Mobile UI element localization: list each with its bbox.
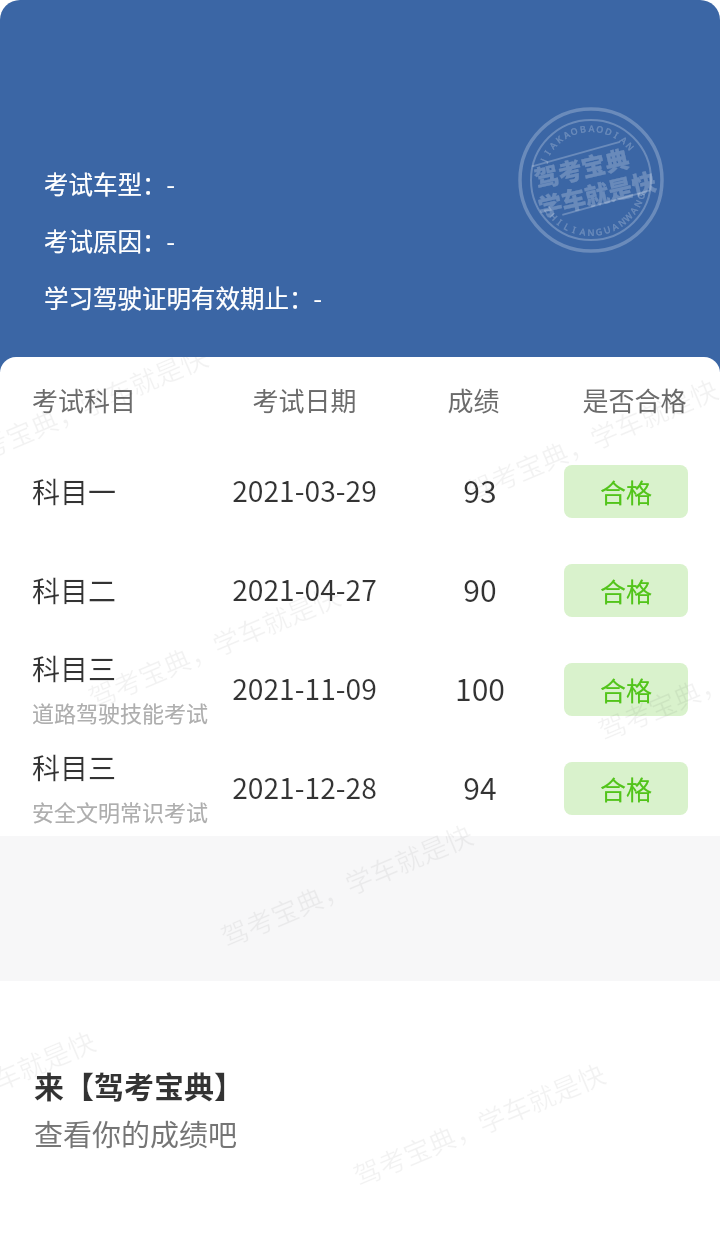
staticText: 科目三: [32, 648, 117, 689]
staticText: 94: [463, 765, 497, 808]
staticText: 考试科目: [32, 381, 137, 419]
staticText: 合格: [600, 572, 653, 610]
staticText: 100: [455, 666, 505, 709]
staticText: 安全文明常识考试: [32, 795, 209, 827]
button[interactable]: 科目二: [0, 541, 720, 640]
staticText: 查看你的成绩吧: [34, 1112, 238, 1154]
staticText: 90: [463, 567, 497, 610]
button[interactable]: 科目三: [0, 739, 720, 836]
button[interactable]: 科目一: [0, 442, 720, 541]
staticText: 道路驾驶技能考试: [32, 696, 209, 728]
staticText: 成绩: [447, 381, 500, 419]
staticText: 科目二: [32, 570, 117, 611]
staticText: 合格: [600, 473, 653, 511]
staticText: 合格: [600, 671, 653, 709]
staticText: 学习驾驶证明有效期止：-: [44, 280, 323, 315]
staticText: 2021-11-09: [232, 667, 377, 708]
staticText: 考试车型：-: [44, 166, 176, 201]
staticText: 93: [463, 468, 497, 511]
staticText: 是否合格: [582, 381, 687, 419]
staticText: 2021-03-29: [232, 469, 377, 510]
staticText: 2021-04-27: [232, 568, 377, 609]
staticText: 科目三: [32, 747, 117, 788]
staticText: 科目一: [32, 471, 117, 512]
staticText: 合格: [600, 770, 653, 808]
staticText: 来【驾考宝典】: [34, 1063, 244, 1106]
staticText: 考试原因：-: [44, 223, 176, 258]
staticText: 考试日期: [252, 381, 357, 419]
button[interactable]: 科目三: [0, 640, 720, 739]
staticText: 2021-12-28: [232, 766, 377, 807]
